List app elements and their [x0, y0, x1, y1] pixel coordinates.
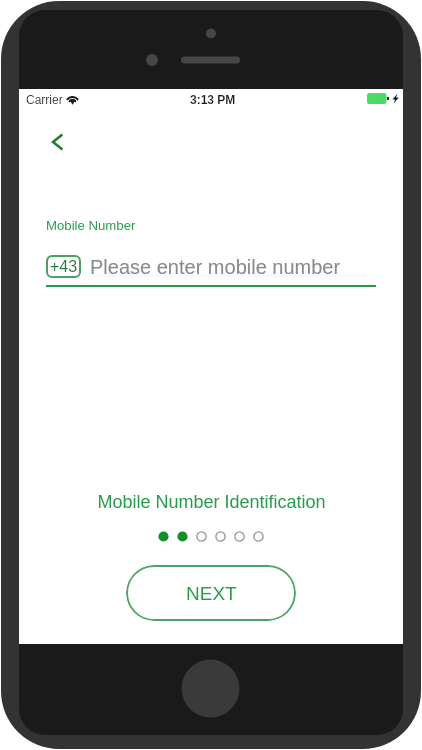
staticText: Carrier: [26, 93, 63, 106]
staticText: Please enter mobile number: [90, 256, 341, 278]
button[interactable]: +43: [46, 255, 81, 278]
staticText: Mobile Number Identification: [97, 492, 326, 512]
staticText: NEXT: [186, 583, 237, 604]
staticText: +43: [50, 258, 78, 276]
staticText: 3:13 PM: [190, 93, 236, 106]
staticText: Mobile Number: [46, 218, 136, 233]
button[interactable]: Back: [39, 124, 75, 160]
button[interactable]: NEXT: [126, 565, 296, 621]
